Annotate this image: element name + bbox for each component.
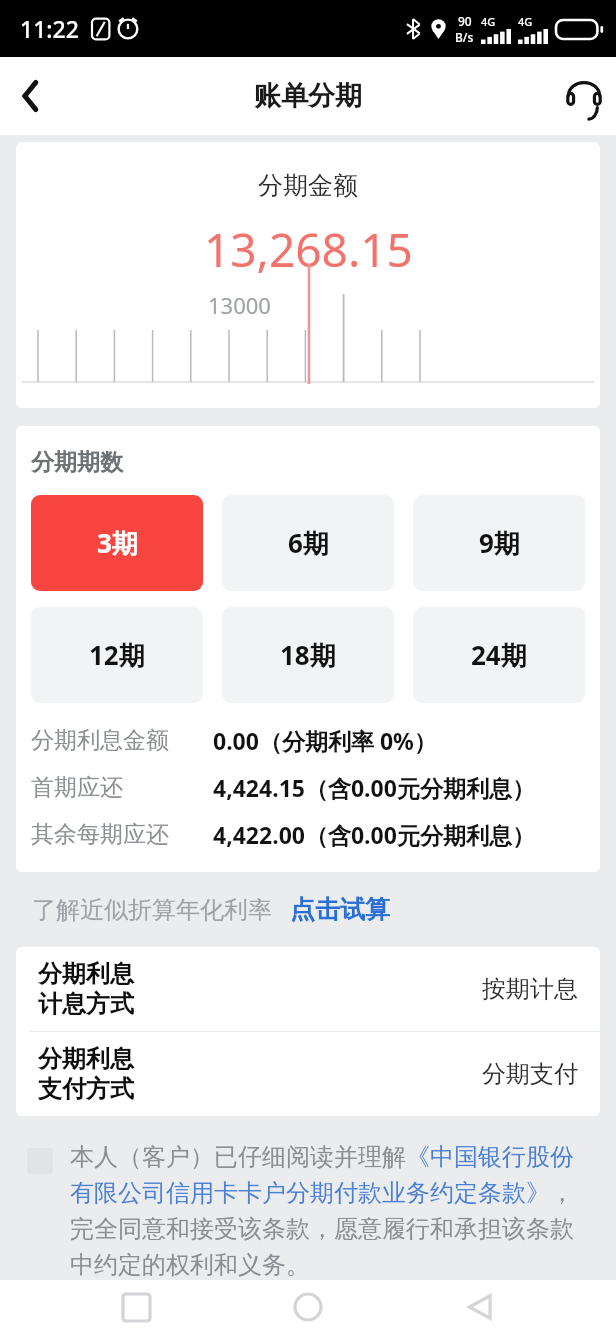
staticText: 分期利息	[38, 1044, 134, 1074]
staticText: 分期利息金额	[31, 726, 169, 755]
staticText: 4G	[518, 14, 533, 29]
staticText: 13000	[208, 290, 271, 320]
staticText: 4G	[481, 14, 496, 29]
staticText: 0.00（分期利率 0%）	[213, 725, 437, 756]
button[interactable]: 分期利息	[16, 1032, 600, 1116]
staticText: 分期利息	[38, 959, 134, 989]
staticText: 9期	[479, 525, 520, 561]
button[interactable]: 点击试算	[290, 894, 390, 925]
button[interactable]: 12期	[31, 607, 203, 703]
staticText: 分期期数	[31, 448, 123, 477]
button[interactable]: 18期	[222, 607, 394, 703]
staticText: 分期金额	[258, 170, 358, 201]
staticText: 本人（客户）已仔细阅读并理解《中国银行股份有限公司信用卡卡户分期付款业务约定条款…	[70, 1142, 580, 1280]
button[interactable]: 9期	[413, 495, 585, 591]
staticText: 按期计息	[482, 974, 578, 1004]
staticText: 点击试算	[290, 894, 390, 925]
staticText: 其余每期应还	[31, 820, 169, 849]
button[interactable]: Back	[444, 1280, 516, 1334]
button[interactable]: Customer service	[552, 64, 616, 128]
staticText: 首期应还	[31, 773, 123, 802]
staticText: 了解近似折算年化利率	[32, 895, 272, 925]
staticText: 24期	[471, 637, 527, 673]
staticText: 13,268.15	[204, 218, 413, 281]
staticText: 4,424.15（含0.00元分期利息）	[213, 772, 535, 803]
staticText: 18期	[280, 637, 336, 673]
button[interactable]: 分期利息	[16, 947, 600, 1031]
staticText: 计息方式	[38, 989, 134, 1019]
staticText: 分期支付	[482, 1059, 578, 1089]
button[interactable]: Home	[272, 1280, 344, 1334]
staticText: 账单分期	[254, 79, 362, 113]
staticText: 3期	[97, 525, 138, 561]
button[interactable]: 6期	[222, 495, 394, 591]
button[interactable]: Recent apps	[100, 1280, 172, 1334]
button[interactable]: 3期	[31, 495, 203, 591]
button[interactable]: Back	[0, 65, 62, 127]
staticText: 支付方式	[38, 1074, 134, 1104]
button[interactable]: 24期	[413, 607, 585, 703]
staticText: 11:22	[20, 13, 79, 44]
staticText: 90	[458, 13, 472, 29]
staticText: 12期	[89, 637, 145, 673]
staticText: 4,422.00（含0.00元分期利息）	[213, 819, 535, 850]
staticText: 6期	[288, 525, 329, 561]
staticText: B/s	[455, 29, 474, 45]
